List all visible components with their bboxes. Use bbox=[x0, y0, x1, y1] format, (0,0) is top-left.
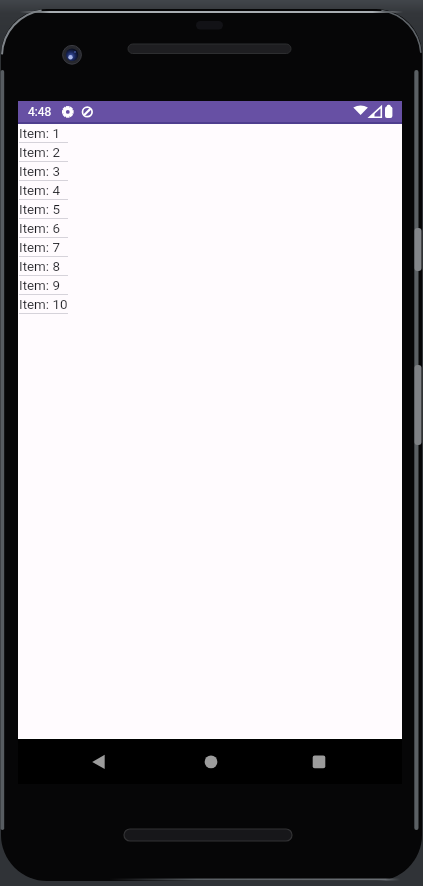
staticText: Item: 3 bbox=[19, 162, 60, 180]
staticText: 4:48 bbox=[28, 105, 52, 119]
button[interactable]: Item: 3 bbox=[19, 162, 60, 180]
button[interactable] bbox=[179, 746, 243, 778]
button[interactable]: Item: 5 bbox=[19, 200, 60, 218]
button[interactable]: Item: 4 bbox=[19, 181, 60, 199]
button[interactable]: Item: 1 bbox=[19, 124, 60, 142]
button[interactable]: Item: 7 bbox=[19, 238, 60, 256]
staticText: Item: 6 bbox=[19, 219, 60, 237]
button[interactable]: Item: 6 bbox=[19, 219, 60, 237]
button[interactable]: Item: 10 bbox=[19, 295, 68, 313]
staticText: Item: 4 bbox=[19, 181, 60, 199]
button[interactable]: Item: 9 bbox=[19, 276, 60, 294]
staticText: Item: 8 bbox=[19, 257, 60, 275]
button[interactable] bbox=[287, 746, 351, 778]
button[interactable] bbox=[76, 746, 140, 778]
staticText: Item: 5 bbox=[19, 200, 60, 218]
staticText: Item: 2 bbox=[19, 143, 60, 161]
staticText: Item: 7 bbox=[19, 238, 60, 256]
staticText: Item: 1 bbox=[19, 124, 60, 142]
staticText: Item: 10 bbox=[19, 295, 68, 313]
button[interactable]: Item: 8 bbox=[19, 257, 60, 275]
button[interactable]: Item: 2 bbox=[19, 143, 60, 161]
staticText: Item: 9 bbox=[19, 276, 60, 294]
